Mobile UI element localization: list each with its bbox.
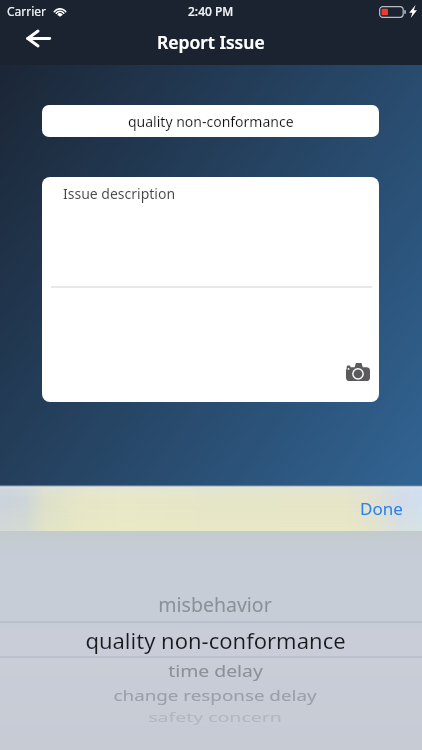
- button[interactable]: Done: [352, 490, 411, 527]
- button[interactable]: change response delay: [4, 677, 422, 713]
- staticText: quality non-conformance: [85, 625, 346, 655]
- button[interactable]: quality non-conformance: [42, 105, 379, 137]
- staticText: time delay: [168, 659, 263, 681]
- staticText: change response delay: [113, 685, 317, 705]
- button[interactable]: Issue description: [42, 177, 379, 402]
- button[interactable]: safety concern: [4, 699, 422, 735]
- button[interactable]: quality non-conformance: [4, 622, 422, 658]
- button[interactable]: misbehavior: [4, 586, 422, 622]
- staticText: Issue description: [63, 184, 176, 203]
- button[interactable]: Add photo: [344, 358, 372, 386]
- button[interactable]: time delay: [4, 652, 422, 688]
- staticText: Carrier: [7, 3, 47, 19]
- staticText: safety concern: [148, 709, 282, 726]
- button[interactable]: Back: [18, 18, 58, 58]
- staticText: Report Issue: [157, 30, 265, 54]
- staticText: misbehavior: [158, 591, 272, 618]
- staticText: quality non-conformance: [128, 112, 294, 131]
- staticText: 2:40 PM: [188, 3, 234, 19]
- staticText: Done: [360, 497, 403, 520]
